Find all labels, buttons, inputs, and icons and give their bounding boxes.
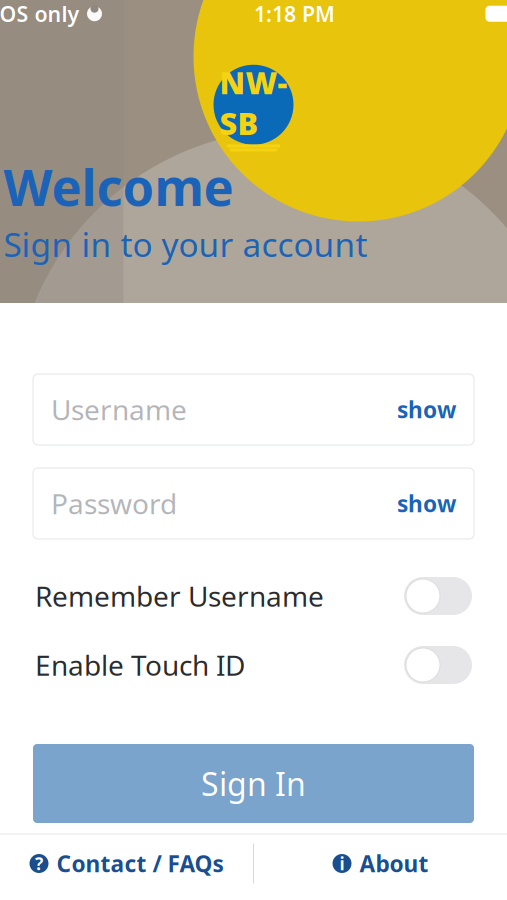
staticText: show — [397, 394, 456, 424]
staticText: Sign In — [201, 762, 306, 805]
staticText: About — [359, 848, 428, 878]
staticText: Enable Touch ID — [35, 646, 245, 684]
staticText: Welcome — [3, 153, 233, 220]
staticText: Remember Username — [35, 577, 324, 615]
button[interactable]: show — [381, 478, 456, 528]
button[interactable]: i — [254, 834, 507, 892]
button[interactable]: ? — [0, 834, 253, 892]
button[interactable]: Sign In — [33, 744, 474, 823]
staticText: SOS only — [0, 0, 79, 28]
staticText: Username — [51, 391, 187, 428]
staticText: NWSB — [219, 62, 287, 143]
staticText: Sign in to your account — [3, 222, 367, 266]
staticText: show — [397, 488, 456, 518]
staticText: Contact / FAQs — [56, 848, 223, 878]
button[interactable]: show — [381, 384, 456, 434]
staticText: 1:18 PM — [254, 0, 335, 28]
staticText: Password — [51, 485, 177, 522]
staticText: ? — [35, 852, 43, 875]
staticText: i — [339, 852, 344, 875]
button[interactable]: Enable Touch ID — [33, 638, 474, 692]
button[interactable]: Remember Username — [33, 569, 474, 623]
